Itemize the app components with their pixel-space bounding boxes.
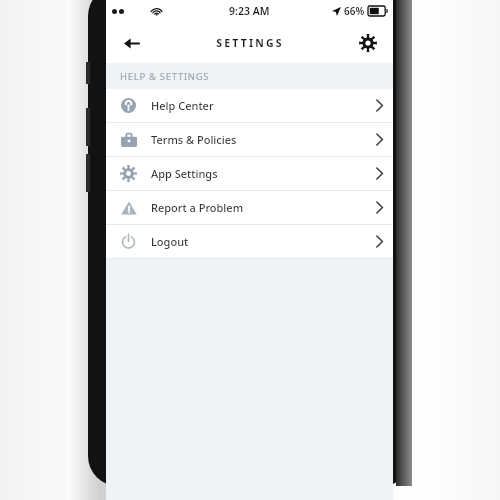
button[interactable]: Back	[116, 28, 146, 58]
staticText: HELP & SETTINGS	[120, 70, 210, 83]
button[interactable]: Logout	[106, 225, 393, 258]
staticText: Report a Problem	[151, 200, 244, 215]
button[interactable]: Terms & Policies	[106, 123, 393, 156]
staticText: 66%	[344, 4, 365, 18]
button[interactable]: Help Center	[106, 89, 393, 122]
staticText: Logout	[151, 234, 189, 249]
staticText: App Settings	[151, 166, 218, 181]
button[interactable]: Settings	[353, 28, 383, 58]
button[interactable]: Report a Problem	[106, 191, 393, 224]
staticText: 9:23 AM	[229, 4, 270, 18]
staticText: Help Center	[151, 98, 214, 113]
button[interactable]: App Settings	[106, 157, 393, 190]
staticText: SETTINGS	[216, 36, 284, 50]
staticText: Terms & Policies	[151, 132, 237, 147]
